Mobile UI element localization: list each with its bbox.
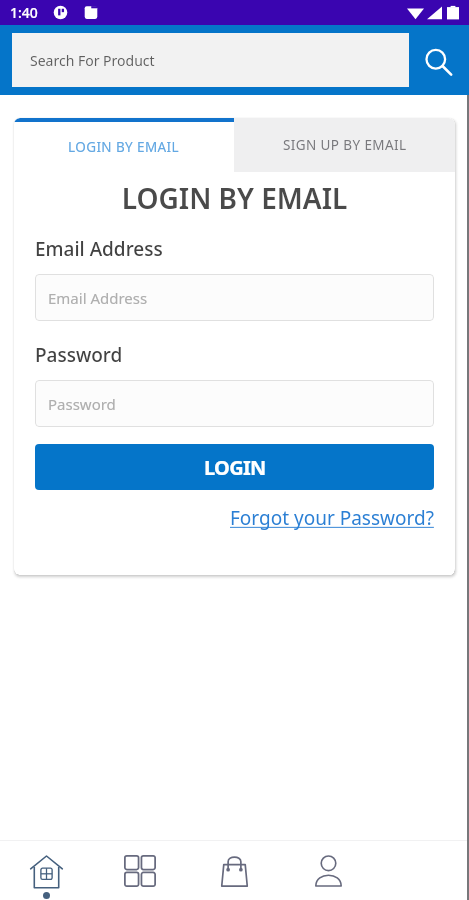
- staticText: LOGIN: [204, 454, 266, 481]
- button[interactable]: Password: [35, 380, 434, 427]
- staticText: Password: [48, 394, 116, 414]
- staticText: Email Address: [35, 236, 163, 262]
- button[interactable]: Home: [0, 841, 93, 900]
- button[interactable]: Search For Product: [12, 33, 409, 87]
- staticText: SIGN UP BY EMAIL: [283, 136, 407, 154]
- staticText: Search For Product: [30, 51, 155, 70]
- button[interactable]: LOGIN: [35, 444, 434, 490]
- button[interactable]: SIGN UP BY EMAIL: [234, 118, 455, 172]
- button[interactable]: Email Address: [35, 274, 434, 321]
- button[interactable]: Forgot your Password?: [230, 505, 434, 531]
- staticText: 1:40: [10, 3, 38, 22]
- button[interactable]: LOGIN BY EMAIL: [14, 118, 234, 172]
- button[interactable]: Categories: [93, 841, 187, 900]
- staticText: LOGIN BY EMAIL: [68, 138, 180, 156]
- button[interactable]: Cart: [187, 841, 281, 900]
- button[interactable]: Search: [409, 25, 469, 95]
- staticText: LOGIN BY EMAIL: [14, 179, 455, 217]
- staticText: Email Address: [48, 288, 148, 308]
- staticText: Password: [35, 342, 123, 368]
- button[interactable]: Account: [281, 841, 375, 900]
